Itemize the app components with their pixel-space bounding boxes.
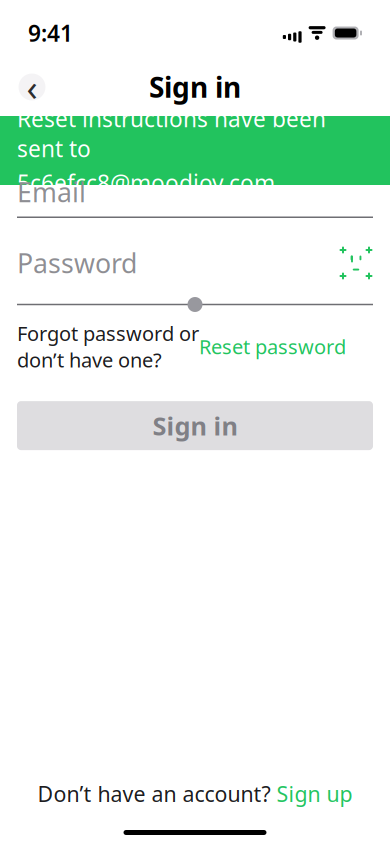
staticText: Forgot password or don’t have one? [17, 320, 199, 373]
staticText: 5c6efcc8@moodjoy.com [17, 168, 275, 198]
button[interactable]: Reset password [199, 333, 346, 360]
staticText: Email [17, 174, 86, 210]
staticText: Sign up [276, 780, 352, 808]
button[interactable]: Back [12, 67, 52, 107]
button[interactable]: Sign in [17, 401, 373, 450]
staticText: Reset password [199, 333, 346, 360]
staticText: Don’t have an account? [37, 780, 276, 808]
button[interactable]: Sign in with Face ID [339, 246, 373, 280]
staticText: 9:41 [28, 18, 73, 48]
staticText: Sign in [149, 68, 241, 106]
staticText: Sign in [152, 409, 237, 442]
staticText: Reset instructions have been sent to [17, 103, 326, 163]
staticText: ‹ [26, 63, 37, 111]
button[interactable]: Sign up [276, 780, 352, 808]
staticText: Password [17, 245, 137, 281]
